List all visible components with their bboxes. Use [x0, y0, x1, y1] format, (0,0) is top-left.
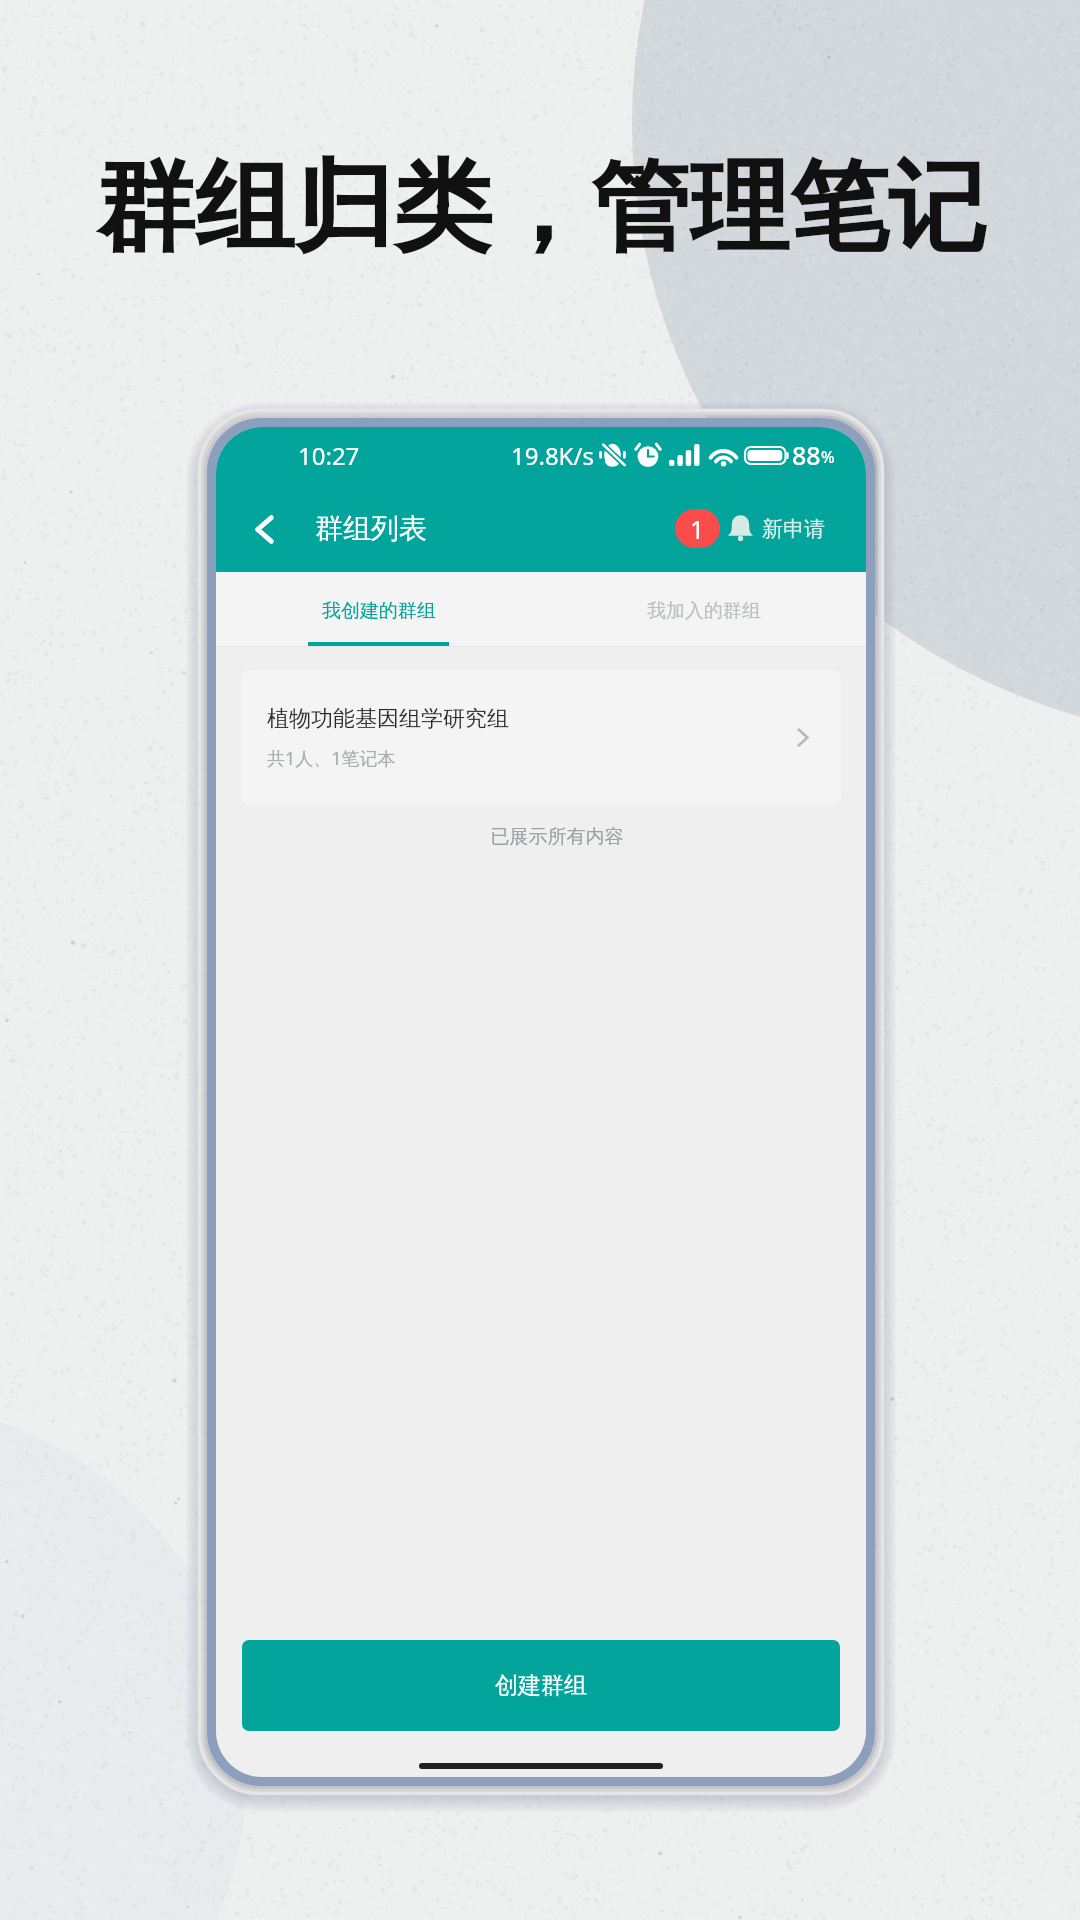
- button[interactable]: 1: [675, 509, 825, 548]
- staticText: 10:27: [298, 439, 360, 472]
- staticText: 新申请: [762, 516, 825, 542]
- button[interactable]: 植物功能基因组学研究组: [241, 670, 841, 805]
- staticText: 已展示所有内容: [232, 825, 866, 849]
- button[interactable]: 我创建的群组: [216, 572, 541, 647]
- button[interactable]: 创建群组: [242, 1640, 840, 1731]
- button[interactable]: 返回: [238, 503, 290, 555]
- staticText: 19.8K/s: [511, 439, 594, 472]
- staticText: 群组列表: [315, 511, 427, 546]
- staticText: 共1人、1笔记本: [267, 746, 396, 771]
- staticText: 我创建的群组: [322, 599, 436, 623]
- staticText: 我加入的群组: [647, 599, 761, 623]
- staticText: 群组归类，管理笔记: [96, 146, 987, 271]
- button[interactable]: 我加入的群组: [541, 572, 866, 647]
- staticText: 植物功能基因组学研究组: [267, 705, 509, 733]
- staticText: 1: [690, 512, 705, 546]
- staticText: 88: [792, 438, 821, 472]
- staticText: %: [821, 446, 835, 468]
- staticText: 创建群组: [495, 1671, 587, 1700]
